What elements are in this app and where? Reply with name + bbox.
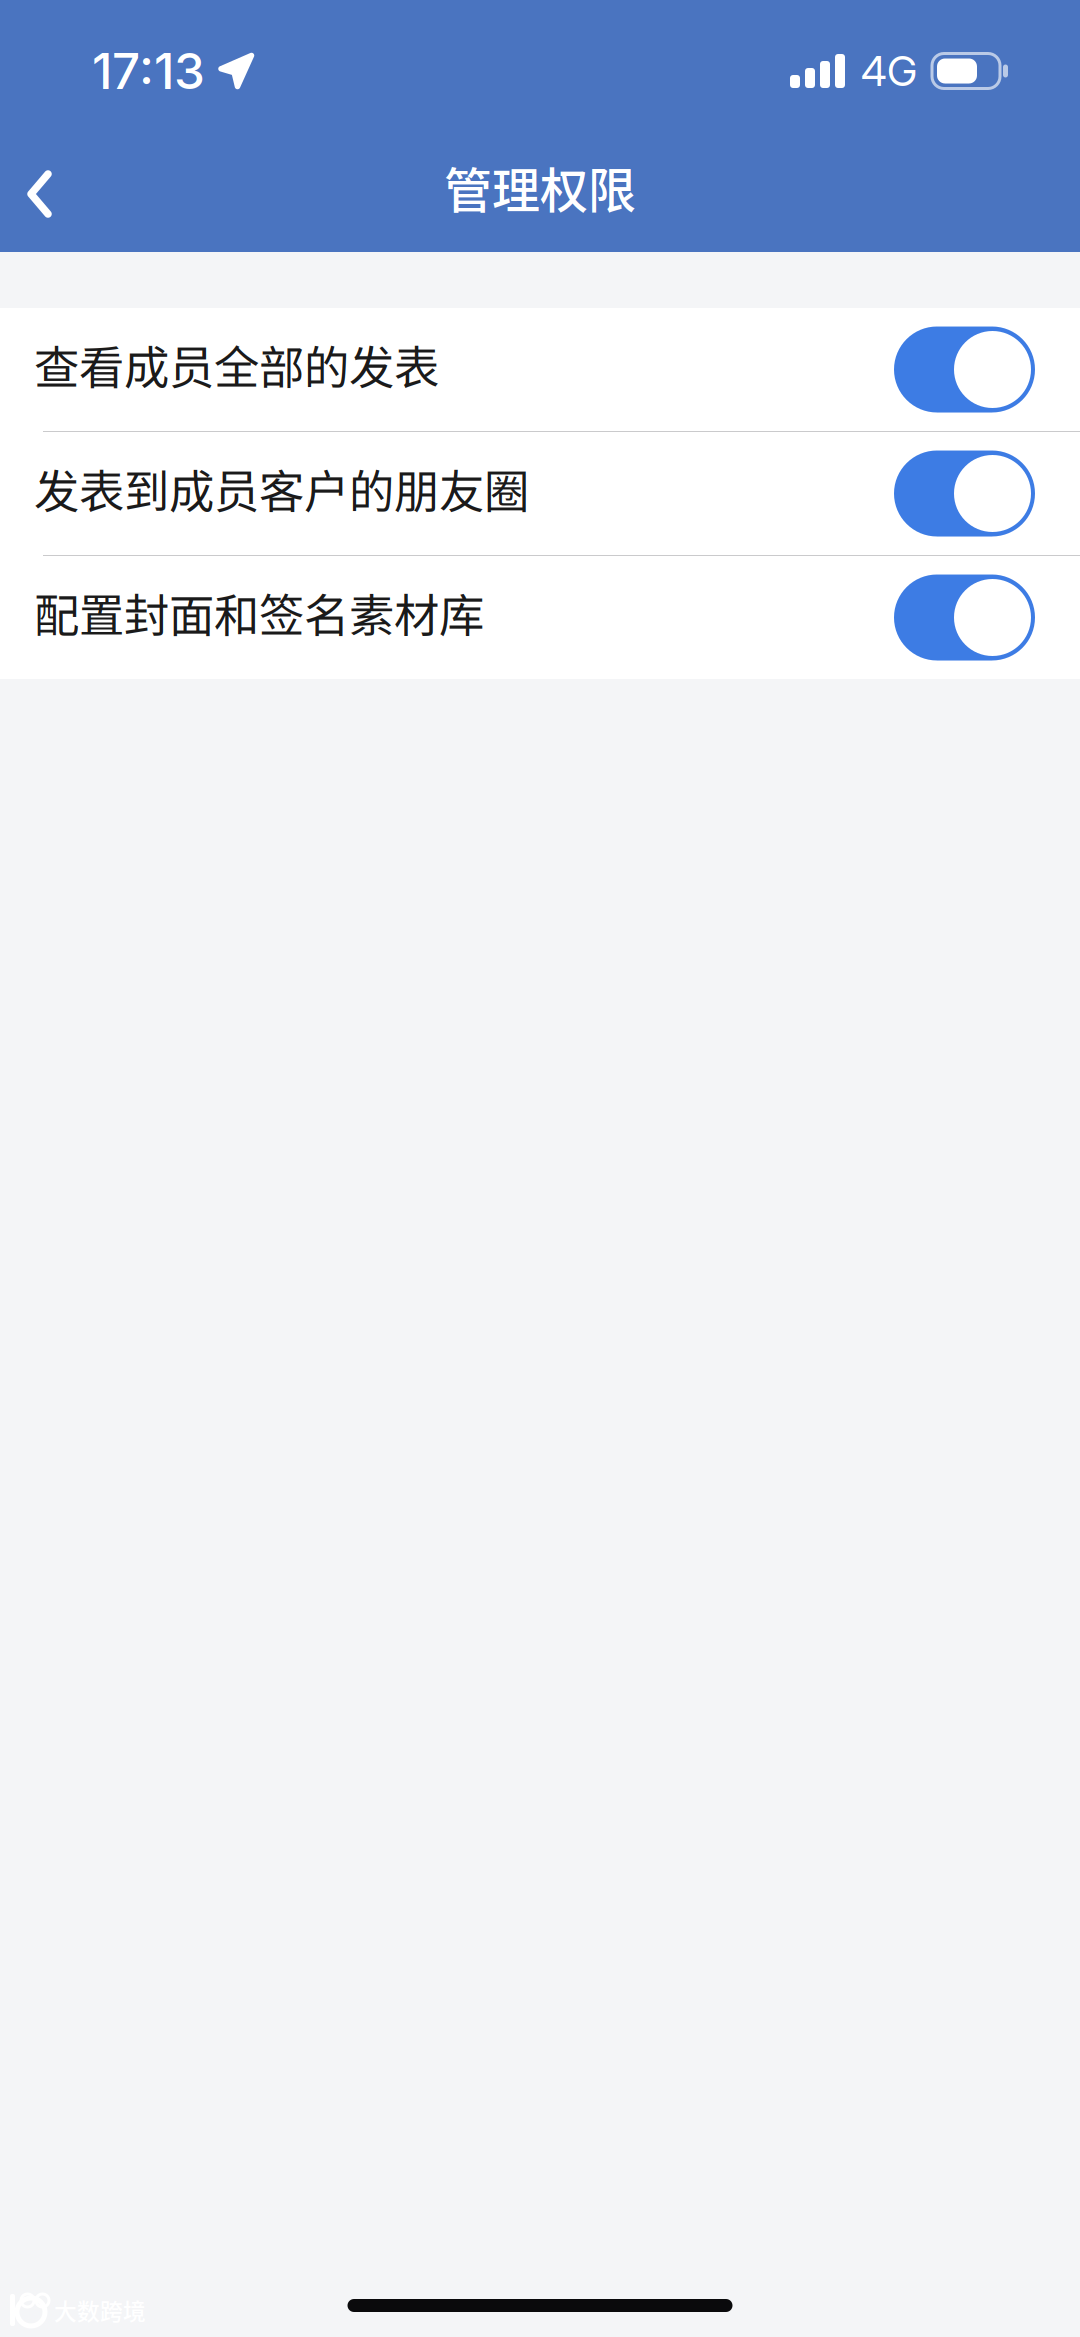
staticText: 发表到成员客户的朋友圈 (34, 456, 529, 521)
button[interactable]: 配置封面和签名素材库 (0, 556, 1080, 679)
staticText: 4G (861, 46, 917, 96)
button[interactable]: 查看成员全部的发表 (0, 308, 1080, 432)
button[interactable]: Back (0, 137, 78, 237)
staticText: 配置封面和签名素材库 (34, 580, 484, 645)
staticText: 17:13 (92, 41, 205, 101)
staticText: 大数跨境 (54, 2294, 146, 2326)
staticText: 查看成员全部的发表 (34, 332, 439, 397)
button[interactable]: 发表到成员客户的朋友圈 (0, 432, 1080, 556)
staticText: 管理权限 (444, 152, 636, 222)
